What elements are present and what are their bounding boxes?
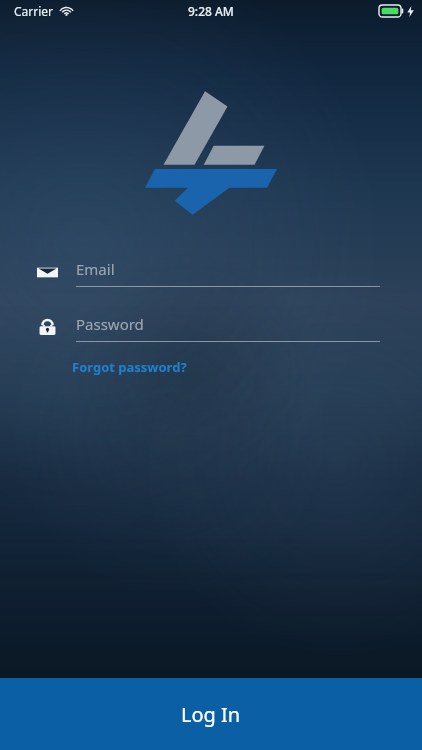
staticText: Password (76, 314, 144, 334)
button[interactable]: Forgot password? (70, 354, 189, 380)
button[interactable]: Log In (0, 678, 422, 750)
other: Email (34, 259, 60, 285)
staticText: Forgot password? (72, 358, 187, 376)
staticText: Email (76, 259, 115, 279)
staticText: Carrier (14, 3, 54, 19)
staticText: 9:28 AM (188, 3, 234, 19)
other: App logo (145, 88, 277, 216)
button[interactable]: Email (34, 256, 380, 287)
button[interactable]: Password (34, 311, 380, 342)
staticText: Log In (181, 701, 241, 728)
other: Password (34, 314, 60, 340)
